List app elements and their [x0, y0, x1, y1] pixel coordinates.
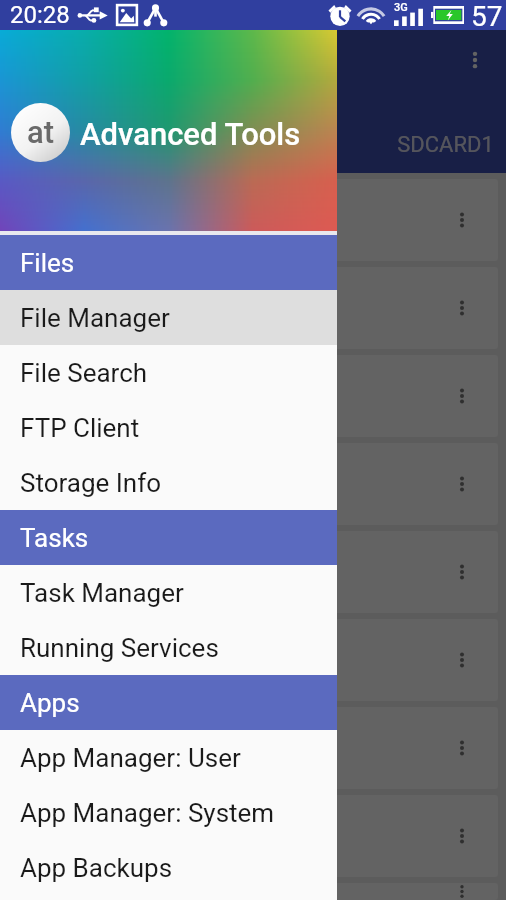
button[interactable]: Item options [8, 795, 498, 877]
button[interactable]: FTP Client [0, 400, 337, 455]
button[interactable]: Item options [8, 883, 498, 900]
button[interactable]: Item options [8, 179, 498, 261]
staticText: INTERNAL [62, 132, 165, 158]
button[interactable]: EXTRA SDCARDC [196, 119, 362, 171]
staticText: Advanced Tools [80, 116, 301, 152]
button[interactable]: App Backups [0, 840, 337, 895]
staticText: 20:28 [10, 1, 70, 29]
button[interactable]: Running Services [0, 620, 337, 675]
staticText: Files [20, 248, 75, 278]
button[interactable]: Item options [8, 531, 498, 613]
staticText: Tasks [20, 523, 89, 553]
staticText: Apps [20, 688, 80, 718]
button[interactable]: SDCARD1 [362, 119, 506, 171]
button[interactable]: Item options [8, 355, 498, 437]
button[interactable]: Item options [8, 619, 498, 701]
staticText: FTP Client [20, 413, 140, 443]
staticText: EXTRA SDCARDC [196, 119, 362, 171]
button[interactable]: Item options [442, 640, 482, 680]
staticText: App Manager: User [20, 743, 241, 773]
button[interactable]: Storage Info [0, 455, 337, 510]
button[interactable]: App Manager: System [0, 785, 337, 840]
button[interactable]: Tasks [0, 510, 337, 565]
button[interactable]: Item options [442, 464, 482, 504]
button[interactable]: Item options [442, 288, 482, 328]
button[interactable]: Item options [442, 552, 482, 592]
button[interactable]: Item options [8, 443, 498, 525]
button[interactable]: Item options [8, 707, 498, 789]
button[interactable]: Item options [442, 376, 482, 416]
button[interactable]: Item options [442, 816, 482, 856]
staticText: at [27, 114, 55, 150]
staticText: 57 [471, 0, 503, 30]
button[interactable]: Item options [8, 267, 498, 349]
staticText: App Manager: System [20, 798, 275, 828]
button[interactable]: Files [0, 235, 337, 290]
staticText: File Search [20, 358, 148, 388]
staticText: Storage Info [20, 468, 162, 498]
staticText: SDCARD1 [397, 132, 494, 158]
button[interactable]: Item options [442, 200, 482, 240]
staticText: 3G [394, 1, 408, 14]
staticText: Running Services [20, 633, 219, 663]
staticText: Task Manager [20, 578, 184, 608]
button[interactable]: File Manager [0, 290, 337, 345]
button[interactable]: Apps [0, 675, 337, 730]
button[interactable]: File Search [0, 345, 337, 400]
button[interactable]: INTERNAL [30, 119, 196, 171]
button[interactable]: at [0, 30, 337, 231]
button[interactable]: More options [451, 36, 499, 84]
button[interactable]: Item options [442, 728, 482, 768]
staticText: File Manager [20, 303, 170, 333]
button[interactable]: Item options [442, 883, 482, 900]
button[interactable]: Task Manager [0, 565, 337, 620]
staticText: App Backups [20, 853, 173, 883]
button[interactable]: App Manager: User [0, 730, 337, 785]
